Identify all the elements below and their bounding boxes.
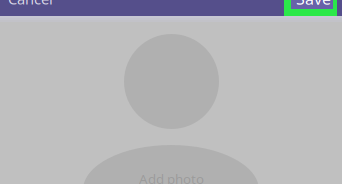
staticText: Save	[296, 0, 331, 9]
staticText: Cancel	[8, 0, 53, 8]
button[interactable]: Save	[0, 0, 42, 16]
button[interactable]: Cancel	[0, 0, 45, 19]
staticText: Add photo	[139, 170, 204, 184]
button[interactable]: Add photo	[0, 0, 342, 184]
